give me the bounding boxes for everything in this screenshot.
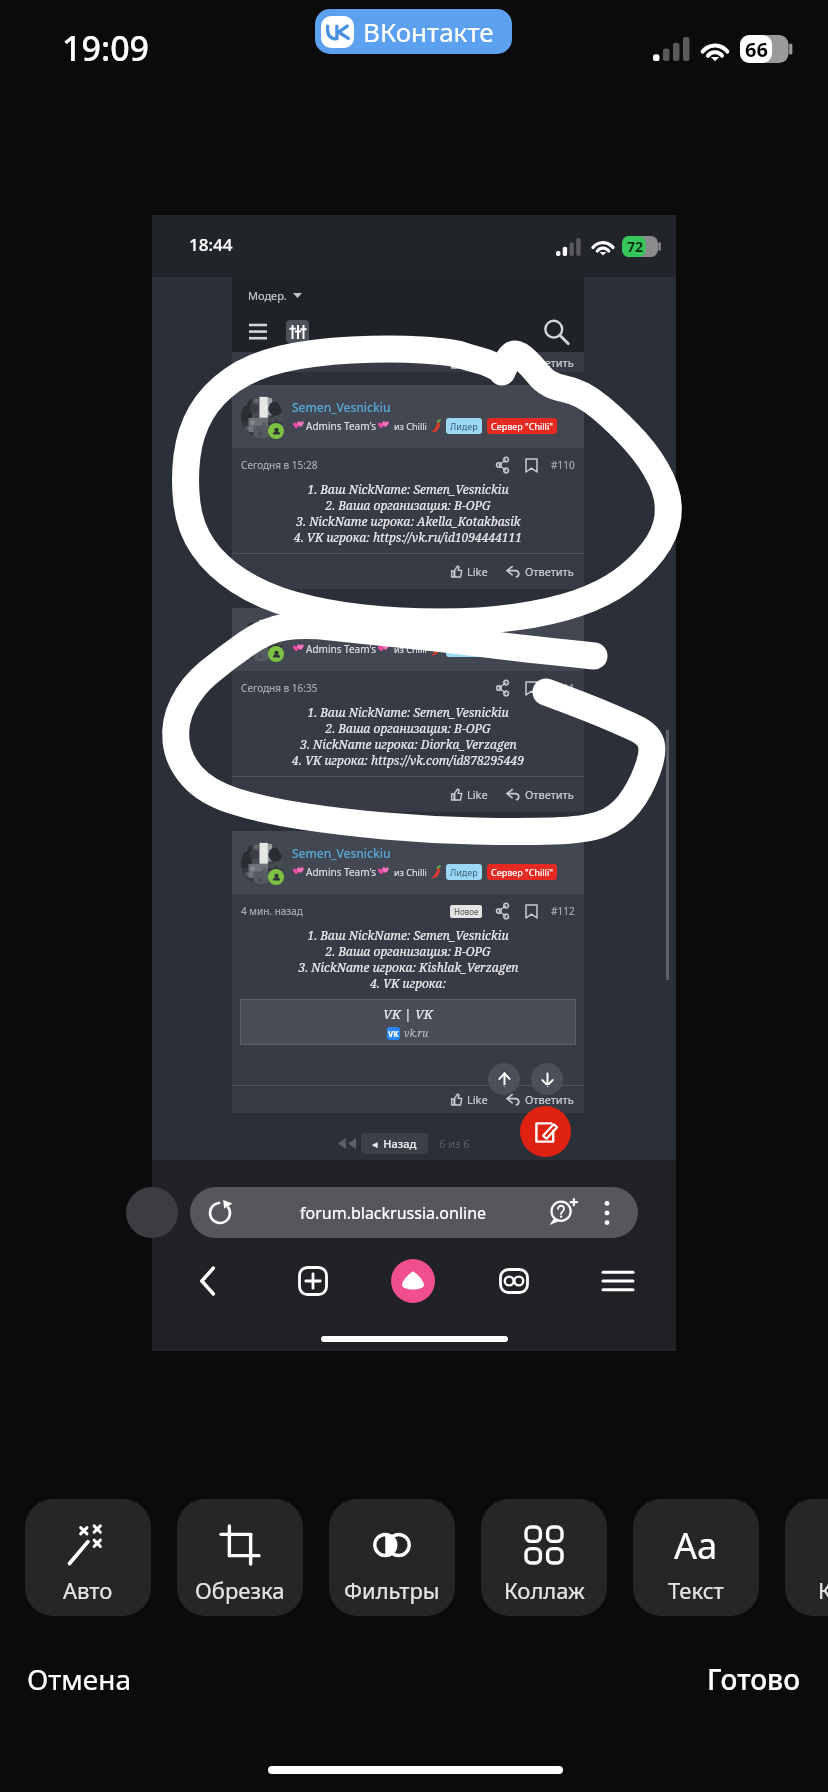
button[interactable]: Авто — [25, 1499, 151, 1616]
staticText: Модер. — [248, 288, 287, 303]
button[interactable]: Коллаж — [481, 1499, 607, 1616]
staticText: Ответить — [525, 787, 574, 802]
staticText: #111 — [551, 681, 575, 695]
staticText: Коллаж — [504, 1575, 585, 1605]
staticText: 3. NickName игрока: Diorka_Verzagen — [300, 736, 517, 752]
button[interactable]: More options — [603, 1201, 611, 1225]
button[interactable]: Фильтры — [329, 1499, 455, 1616]
staticText: 1. Ваш NickName: Semen_Vesnickiu — [307, 927, 509, 943]
staticText: Admins Team's — [306, 419, 377, 433]
staticText: Сегодня в 15:28 — [241, 458, 318, 472]
button[interactable]: Alice assistant — [391, 1259, 435, 1303]
staticText: 66 — [745, 36, 768, 63]
staticText: 4 мин. назад — [241, 904, 303, 918]
staticText: Обрезка — [195, 1575, 285, 1605]
button[interactable]: Like — [449, 562, 490, 581]
button[interactable]: Like — [449, 1090, 490, 1109]
staticText: 2. Ваша организация: B-OPG — [325, 943, 491, 959]
staticText: Сервер "Chilli" — [491, 420, 553, 432]
button[interactable]: Scroll up — [488, 1063, 520, 1095]
staticText: Сегодня в 16:35 — [241, 681, 318, 695]
button[interactable]: Модер. — [246, 285, 304, 306]
button[interactable]: forum.blackrussia.online — [190, 1187, 638, 1238]
button[interactable]: Filters — [286, 320, 309, 343]
staticText: ◂ Назад — [372, 1136, 417, 1151]
staticText: 4. VK игрока: — [370, 975, 446, 991]
staticText: VK | VK — [383, 1005, 433, 1023]
button[interactable]: Ответить — [505, 785, 576, 804]
button[interactable]: Bookmark — [525, 457, 538, 474]
button[interactable]: Search — [542, 318, 570, 346]
button[interactable]: New post — [520, 1106, 571, 1157]
button[interactable]: Semen_Vesnickiu — [292, 399, 391, 415]
button[interactable]: Semen_Vesnickiu — [292, 845, 391, 861]
staticText: Кисть — [818, 1575, 828, 1605]
staticText: 1. Ваш NickName: Semen_Vesnickiu — [307, 704, 509, 720]
button[interactable]: Share — [496, 903, 509, 919]
button[interactable]: Like — [449, 353, 490, 372]
staticText: Aa — [674, 1521, 718, 1569]
staticText: Admins Team's — [306, 642, 377, 656]
staticText: ВКонтакте — [363, 14, 494, 49]
staticText: vk.ru — [404, 1026, 429, 1040]
staticText: Like — [467, 1092, 488, 1107]
button[interactable]: Tabs — [488, 1255, 540, 1307]
staticText: 2. Ваша организация: B-OPG — [325, 720, 491, 736]
staticText: Лидер — [450, 866, 478, 878]
button[interactable]: Aa — [633, 1499, 759, 1616]
staticText: 1. Ваш NickName: Semen_Vesnickiu — [307, 481, 509, 497]
button[interactable]: New tab — [287, 1255, 339, 1307]
staticText: из Chilli — [394, 643, 427, 655]
button[interactable]: Menu — [592, 1255, 644, 1307]
staticText: VK — [388, 1028, 399, 1039]
staticText: Like — [467, 787, 488, 802]
staticText: 3. NickName игрока: Kishlak_Verzagen — [298, 959, 519, 975]
staticText: Ответить — [525, 355, 574, 370]
button[interactable]: Кисть — [785, 1499, 828, 1616]
button[interactable]: Like — [449, 785, 490, 804]
staticText: Авто — [63, 1575, 113, 1605]
staticText: #112 — [551, 904, 575, 918]
staticText: 3. NickName игрока: Akella_Kotakbasik — [296, 513, 521, 529]
staticText: Like — [467, 564, 488, 579]
staticText: 4. VK игрока: https://vk.com/id878295449 — [292, 752, 524, 768]
staticText: 6 из 6 — [439, 1136, 470, 1151]
button[interactable]: Menu — [246, 319, 270, 341]
staticText: из Chilli — [394, 420, 427, 432]
staticText: из Chilli — [394, 866, 427, 878]
button[interactable]: ВКонтакте — [315, 9, 512, 54]
button[interactable]: Готово — [705, 1658, 802, 1700]
button[interactable]: VK | VK — [241, 1000, 575, 1044]
staticText: Лидер — [450, 420, 478, 432]
staticText: Лидер — [450, 643, 478, 655]
button[interactable]: Bookmark — [525, 680, 538, 697]
button[interactable]: Ответить — [505, 1090, 576, 1109]
staticText: Новое — [454, 906, 479, 917]
staticText: Ответить — [525, 1092, 574, 1107]
staticText: 18:44 — [189, 233, 233, 256]
button[interactable]: Scroll down — [531, 1063, 563, 1095]
staticText: Ответить — [525, 564, 574, 579]
staticText: Текст — [668, 1575, 724, 1605]
button[interactable]: Обрезка — [177, 1499, 303, 1616]
staticText: #110 — [551, 458, 575, 472]
button[interactable]: ◂ Назад — [361, 1133, 428, 1154]
staticText: 2. Ваша организация: B-OPG — [325, 497, 491, 513]
button[interactable]: Ответить — [505, 353, 576, 372]
button[interactable]: Отмена — [25, 1658, 134, 1700]
button[interactable]: Bookmark — [525, 903, 538, 920]
staticText: Сервер "Chilli" — [491, 866, 553, 878]
button[interactable]: First page — [338, 1138, 356, 1149]
button[interactable]: Share — [496, 457, 509, 473]
staticText: Фильтры — [344, 1575, 440, 1605]
button[interactable]: Help — [547, 1198, 579, 1228]
button[interactable]: Ответить — [505, 562, 576, 581]
staticText: Admins Team's — [306, 865, 377, 879]
staticText: 19:09 — [62, 25, 150, 71]
button[interactable]: Share — [496, 680, 509, 696]
staticText: 4. VK игрока: https://vk.ru/id1094444111 — [294, 529, 522, 545]
button[interactable]: Back — [182, 1255, 234, 1307]
